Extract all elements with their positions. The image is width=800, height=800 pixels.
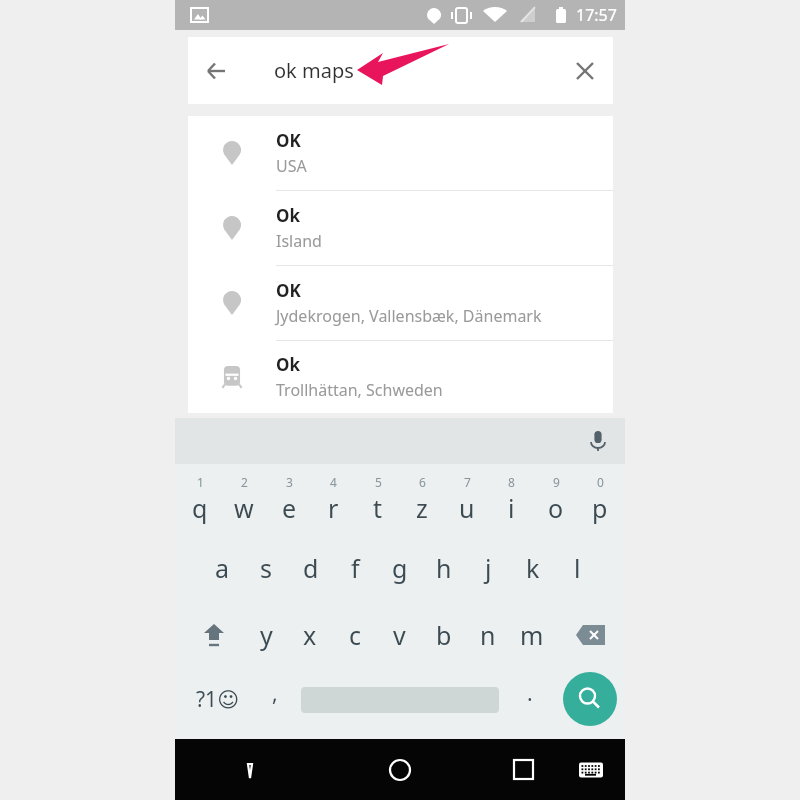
staticText: 8 <box>508 474 515 490</box>
button[interactable]: ?1☺ <box>186 670 250 728</box>
staticText: p <box>592 491 608 525</box>
staticText: OK <box>276 129 301 152</box>
button[interactable]: Ok <box>188 191 613 265</box>
staticText: USA <box>276 155 307 177</box>
staticText: x <box>303 618 317 652</box>
button[interactable]: Clear <box>557 37 613 104</box>
button[interactable]: b <box>422 604 466 666</box>
button[interactable]: c <box>333 604 377 666</box>
button[interactable]: OK <box>188 266 613 340</box>
staticText: Island <box>276 230 322 252</box>
button[interactable]: j <box>466 537 510 599</box>
staticText: f <box>351 551 360 585</box>
button[interactable]: Voice input <box>571 418 625 464</box>
button[interactable]: f <box>333 537 377 599</box>
staticText: Ok <box>276 353 300 376</box>
button[interactable]: k <box>511 537 555 599</box>
staticText: e <box>282 491 297 525</box>
staticText: 4 <box>330 474 337 490</box>
button[interactable]: Recents <box>493 739 553 800</box>
button[interactable]: 3 <box>267 468 311 530</box>
staticText: u <box>459 491 475 525</box>
button[interactable]: Home <box>370 739 430 800</box>
staticText: v <box>393 618 406 652</box>
staticText: OK <box>276 279 301 302</box>
button[interactable]: x <box>288 604 332 666</box>
button[interactable]: 7 <box>445 468 489 530</box>
staticText: c <box>349 618 362 652</box>
button[interactable]: Switch keyboard <box>563 739 619 800</box>
button[interactable]: Search <box>563 672 617 726</box>
button[interactable]: 2 <box>222 468 266 530</box>
staticText: . <box>527 679 533 708</box>
staticText: h <box>436 551 452 585</box>
button[interactable]: y <box>244 604 288 666</box>
staticText: 0 <box>597 474 604 490</box>
staticText: 17:57 <box>576 4 617 26</box>
staticText: 6 <box>419 474 426 490</box>
staticText: w <box>234 491 254 525</box>
staticText: 1 <box>197 474 204 490</box>
staticText: g <box>392 551 408 585</box>
button[interactable]: v <box>377 604 421 666</box>
button[interactable]: h <box>422 537 466 599</box>
staticText: Trollhättan, Schweden <box>276 379 443 401</box>
staticText: 3 <box>286 474 293 490</box>
staticText: q <box>192 491 208 525</box>
button[interactable]: 0 <box>578 468 622 530</box>
staticText: r <box>328 491 339 525</box>
staticText: 2 <box>241 474 248 490</box>
button[interactable]: Shift <box>186 604 242 666</box>
button[interactable]: 5 <box>356 468 400 530</box>
staticText: l <box>574 551 581 585</box>
staticText: o <box>548 491 564 525</box>
button[interactable]: d <box>289 537 333 599</box>
button[interactable]: l <box>555 537 599 599</box>
button[interactable]: n <box>466 604 510 666</box>
staticText: m <box>520 618 544 652</box>
staticText: k <box>526 551 540 585</box>
staticText: Jydekrogen, Vallensbæk, Dänemark <box>276 305 542 327</box>
staticText: b <box>436 618 452 652</box>
button[interactable]: . <box>505 670 555 728</box>
staticText: , <box>272 679 278 708</box>
button[interactable]: 1 <box>178 468 222 530</box>
button[interactable]: 8 <box>489 468 533 530</box>
staticText: n <box>480 618 496 652</box>
staticText: y <box>260 618 273 652</box>
staticText: 5 <box>375 474 382 490</box>
staticText: ?1☺ <box>196 685 240 714</box>
button[interactable]: Ok <box>188 341 613 413</box>
button[interactable]: , <box>250 670 300 728</box>
staticText: z <box>416 491 428 525</box>
staticText: t <box>373 491 383 525</box>
staticText: i <box>508 491 515 525</box>
staticText: j <box>485 551 492 585</box>
staticText: a <box>215 551 230 585</box>
button[interactable]: 6 <box>400 468 444 530</box>
button[interactable]: 4 <box>311 468 355 530</box>
button[interactable]: Backspace <box>563 604 619 666</box>
staticText: d <box>303 551 319 585</box>
button[interactable]: Back <box>188 37 244 104</box>
button[interactable]: 9 <box>534 468 578 530</box>
staticText: Ok <box>276 204 300 227</box>
button[interactable]: OK <box>188 116 613 190</box>
button[interactable]: m <box>510 604 554 666</box>
staticText: ok maps <box>274 57 354 84</box>
staticText: s <box>260 551 272 585</box>
staticText: 7 <box>464 474 471 490</box>
button[interactable]: g <box>378 537 422 599</box>
button[interactable]: a <box>200 537 244 599</box>
staticText: 9 <box>553 474 560 490</box>
button[interactable]: s <box>244 537 288 599</box>
